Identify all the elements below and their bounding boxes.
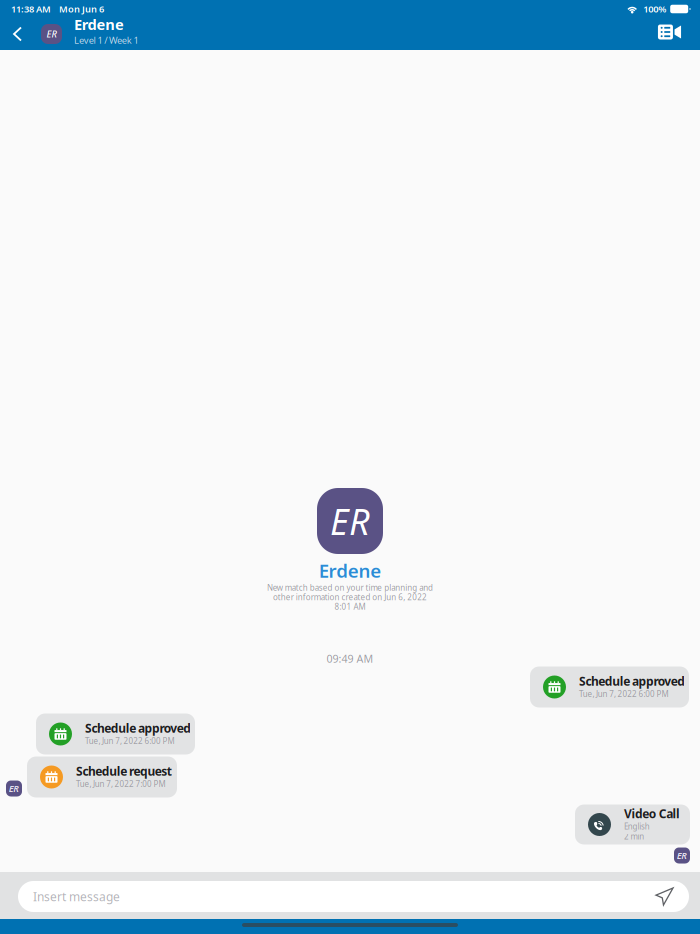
- staticText: Video Call: [624, 805, 680, 821]
- button[interactable]: Video Call: [575, 804, 690, 844]
- button[interactable]: Schedule approved: [530, 666, 689, 707]
- button[interactable]: Schedule request: [27, 756, 177, 797]
- staticText: 11:38 AM: [11, 3, 51, 15]
- staticText: Schedule request: [76, 763, 172, 779]
- staticText: 09:49 AM: [326, 651, 373, 666]
- staticText: 100%: [643, 3, 666, 15]
- staticText: Level 1 / Week 1: [74, 34, 138, 46]
- staticText: ER: [46, 28, 56, 40]
- staticText: Schedule approved: [85, 720, 191, 736]
- button[interactable]: Schedule approved: [36, 713, 195, 754]
- staticText: ER: [330, 497, 370, 545]
- button[interactable]: Send: [656, 888, 673, 905]
- staticText: ER: [9, 782, 19, 795]
- staticText: Tue, Jun 7, 2022 6:00 PM: [85, 736, 174, 746]
- staticText: Erdene: [74, 14, 124, 34]
- staticText: other information created on Jun 6, 2022: [273, 592, 427, 602]
- staticText: Insert message: [33, 888, 120, 904]
- staticText: Erdene: [319, 558, 381, 583]
- button[interactable]: Video call: [646, 18, 700, 49]
- staticText: New match based on your time planning an…: [267, 582, 433, 593]
- staticText: ER: [677, 849, 687, 862]
- staticText: Tue, Jun 7, 2022 7:00 PM: [76, 779, 165, 789]
- staticText: 8:01 AM: [335, 601, 365, 612]
- staticText: English: [624, 821, 650, 832]
- button[interactable]: Back: [0, 18, 41, 49]
- staticText: 2 min: [624, 831, 644, 842]
- staticText: Mon Jun 6: [59, 3, 104, 15]
- staticText: Schedule approved: [579, 673, 685, 689]
- staticText: Tue, Jun 7, 2022 6:00 PM: [579, 689, 668, 699]
